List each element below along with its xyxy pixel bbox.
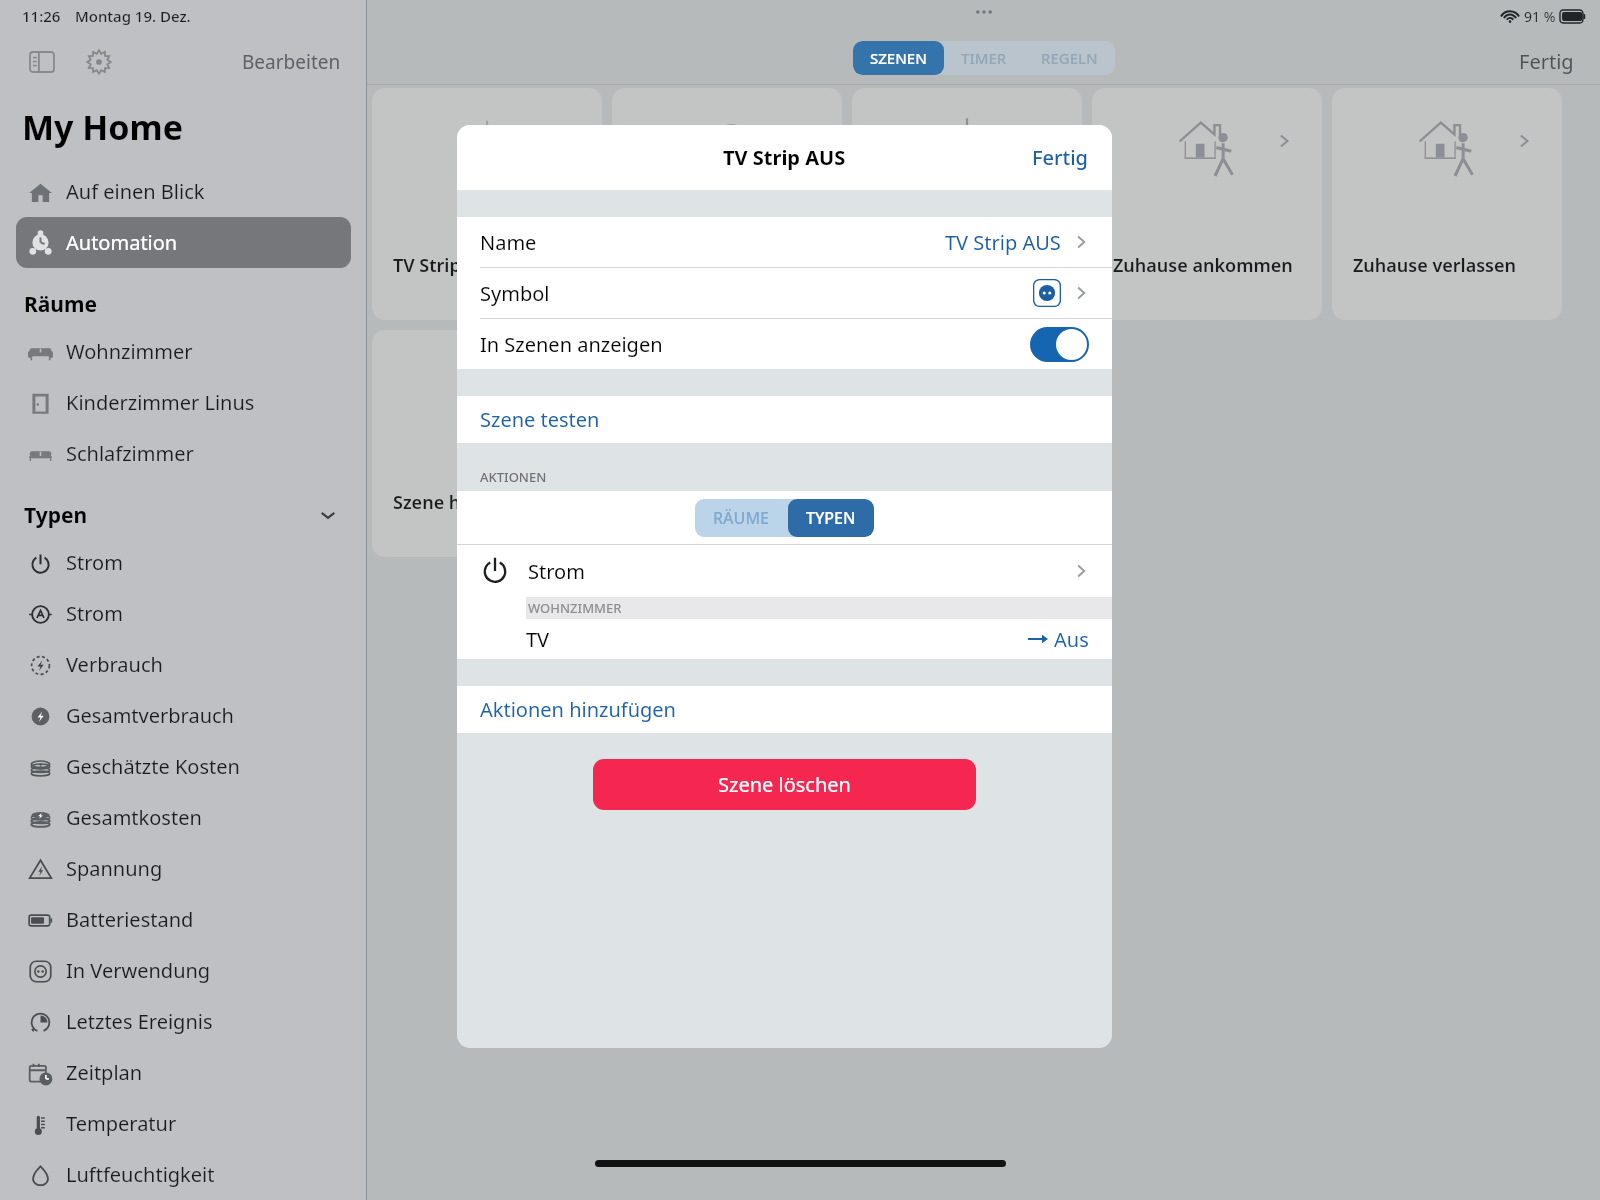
- staticText: TV Strip AUS: [945, 229, 1061, 256]
- button[interactable]: Symbol: [457, 268, 1112, 318]
- button[interactable]: Symbol wählen: [1033, 279, 1061, 307]
- staticText: My Home: [22, 104, 184, 150]
- staticText: TYPEN: [806, 507, 856, 529]
- button[interactable]: Strom: [457, 545, 1112, 597]
- staticText: Geschätzte Kosten: [66, 753, 240, 780]
- staticText: Szene löschen: [718, 771, 851, 798]
- staticText: TV Strip AUS: [723, 144, 846, 171]
- button[interactable]: Geschätzte Kosten: [16, 741, 351, 792]
- staticText: Symbol: [480, 280, 550, 307]
- staticText: RÄUME: [713, 507, 770, 529]
- staticText: TV Strip AUS: [393, 253, 501, 278]
- staticText: Räume: [24, 290, 98, 319]
- button[interactable]: Szene hinzufügen: [372, 330, 602, 557]
- staticText: 11:26: [22, 6, 61, 26]
- staticText: 91 %: [1524, 7, 1556, 26]
- staticText: Luftfeuchtigkeit: [66, 1161, 215, 1188]
- button[interactable]: SZENEN: [853, 41, 1115, 75]
- button[interactable]: Bearbeiten: [238, 45, 345, 79]
- staticText: Montag 19. Dez.: [75, 6, 191, 26]
- button[interactable]: Luftfeuchtigkeit: [16, 1149, 351, 1200]
- staticText: Auf einen Blick: [66, 178, 205, 205]
- staticText: Automation: [66, 229, 178, 256]
- button[interactable]: RÄUME: [695, 499, 788, 537]
- button[interactable]: Szene löschen: [593, 759, 976, 810]
- staticText: Fertig: [1032, 144, 1088, 171]
- button[interactable]: Gesamtkosten: [16, 792, 351, 843]
- button[interactable]: In Szenen anzeigen: [1030, 327, 1089, 362]
- staticText: Wohnzimmer: [66, 338, 193, 365]
- button[interactable]: Gesamtverbrauch: [16, 690, 351, 741]
- staticText: Temperatur: [66, 1110, 177, 1137]
- button[interactable]: TV Strip AUS: [372, 88, 602, 320]
- staticText: AKTIONEN: [480, 468, 547, 486]
- staticText: Zeitplan: [66, 1059, 143, 1086]
- button[interactable]: Fertig: [1008, 136, 1112, 179]
- button[interactable]: Temperatur: [16, 1098, 351, 1149]
- button[interactable]: [852, 88, 1082, 320]
- staticText: TV: [526, 626, 550, 653]
- button[interactable]: In Szenen anzeigen: [457, 319, 1112, 369]
- staticText: WOHNZIMMER: [528, 599, 622, 617]
- staticText: Zuhause verlassen: [1353, 253, 1517, 278]
- staticText: Letztes Ereignis: [66, 1008, 213, 1035]
- button[interactable]: SZENEN: [853, 41, 944, 75]
- button[interactable]: Szene testen: [457, 396, 1112, 443]
- staticText: TIMER: [961, 48, 1007, 68]
- button[interactable]: Zeitplan: [16, 1047, 351, 1098]
- button[interactable]: Wohnzimmer: [16, 326, 351, 377]
- button[interactable]: TYPEN: [788, 499, 874, 537]
- staticText: Aus: [1054, 626, 1089, 653]
- staticText: Strom: [66, 600, 123, 627]
- button[interactable]: Schlafzimmer: [16, 428, 351, 479]
- button[interactable]: Zuhause ankommen: [1092, 88, 1322, 320]
- button[interactable]: Strom: [16, 537, 351, 588]
- button[interactable]: Einstellungen: [79, 42, 119, 82]
- button[interactable]: RÄUME: [695, 499, 874, 537]
- button[interactable]: Aktionen hinzufügen: [457, 686, 1112, 733]
- staticText: Gesamtverbrauch: [66, 702, 234, 729]
- button[interactable]: Automation: [16, 217, 351, 268]
- staticText: Batteriestand: [66, 906, 194, 933]
- staticText: Szene hinzufügen: [393, 490, 549, 515]
- button[interactable]: Spannung: [16, 843, 351, 894]
- staticText: Verbrauch: [66, 651, 163, 678]
- button[interactable]: Zuhause verlassen: [1332, 88, 1562, 320]
- staticText: Fertig: [1519, 48, 1574, 75]
- staticText: Strom: [66, 549, 123, 576]
- staticText: Zuhause ankommen: [1113, 253, 1293, 278]
- button[interactable]: Auf einen Blick: [16, 166, 351, 217]
- staticText: Schlafzimmer: [66, 440, 194, 467]
- staticText: Typen: [24, 501, 88, 530]
- staticText: Name: [480, 229, 537, 256]
- button[interactable]: Sidebar: [22, 42, 62, 82]
- button[interactable]: Strom: [16, 588, 351, 639]
- staticText: In Szenen anzeigen: [480, 331, 663, 358]
- staticText: In Verwendung: [66, 957, 211, 984]
- button[interactable]: TV: [457, 619, 1112, 659]
- staticText: Strom: [528, 558, 585, 585]
- staticText: Bearbeiten: [242, 49, 341, 75]
- staticText: Aktionen hinzufügen: [480, 696, 676, 723]
- button[interactable]: Letztes Ereignis: [16, 996, 351, 1047]
- staticText: SZENEN: [870, 48, 927, 68]
- staticText: REGELN: [1041, 48, 1098, 68]
- button[interactable]: [612, 88, 842, 320]
- button[interactable]: Kinderzimmer Linus: [16, 377, 351, 428]
- staticText: Kinderzimmer Linus: [66, 389, 255, 416]
- button[interactable]: Verbrauch: [16, 639, 351, 690]
- button[interactable]: TIMER: [944, 41, 1024, 75]
- button[interactable]: Fertig: [1515, 44, 1578, 79]
- button[interactable]: Name: [457, 217, 1112, 267]
- button[interactable]: Batteriestand: [16, 894, 351, 945]
- staticText: Spannung: [66, 855, 163, 882]
- staticText: Gesamtkosten: [66, 804, 202, 831]
- button[interactable]: In Verwendung: [16, 945, 351, 996]
- button[interactable]: REGELN: [1024, 41, 1115, 75]
- staticText: Szene testen: [480, 406, 600, 433]
